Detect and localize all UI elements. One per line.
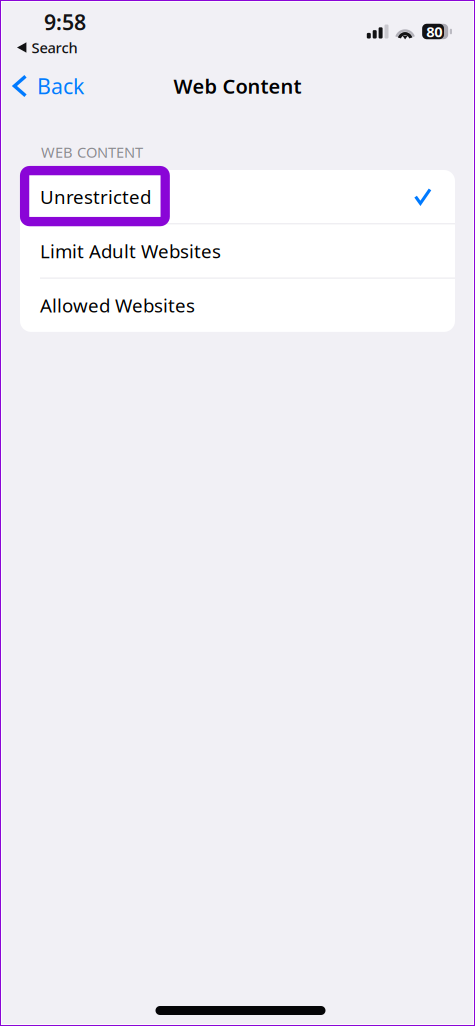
button[interactable]: Back <box>0 66 94 106</box>
staticText: Unrestricted <box>40 184 151 209</box>
staticText: 9:58 <box>44 8 86 36</box>
staticText: Search <box>31 38 77 57</box>
button[interactable]: Limit Adult Websites <box>20 224 455 278</box>
staticText: Limit Adult Websites <box>40 239 221 263</box>
staticText: Allowed Websites <box>40 293 195 318</box>
staticText: WEB CONTENT <box>41 142 143 162</box>
button[interactable]: Unrestricted <box>20 170 455 223</box>
staticText: Web Content <box>173 73 301 99</box>
button[interactable]: Allowed Websites <box>20 279 455 332</box>
staticText: 80 <box>426 22 442 41</box>
staticText: Back <box>37 72 84 100</box>
